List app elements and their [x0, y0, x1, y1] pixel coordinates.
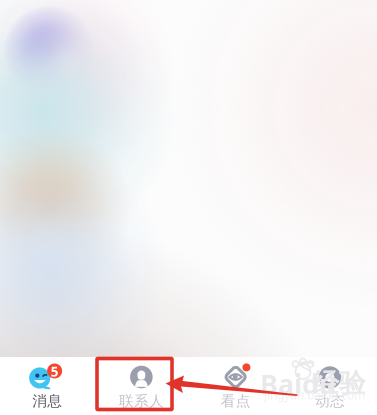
staticText: 经验 [312, 367, 366, 400]
staticText: 动态 [315, 392, 345, 410]
staticText: 5 [51, 363, 59, 380]
staticText: 联系人 [119, 392, 164, 410]
staticText: Baidu [260, 366, 336, 401]
staticText: 看点 [221, 392, 251, 410]
button[interactable]: 动态 [283, 357, 377, 415]
button[interactable]: 联系人 [94, 357, 188, 415]
button[interactable]: 5 [0, 357, 94, 415]
staticText: 消息 [32, 392, 62, 410]
staticText: jingyan.baidu.com [264, 387, 365, 403]
button[interactable]: 看点 [188, 357, 283, 415]
